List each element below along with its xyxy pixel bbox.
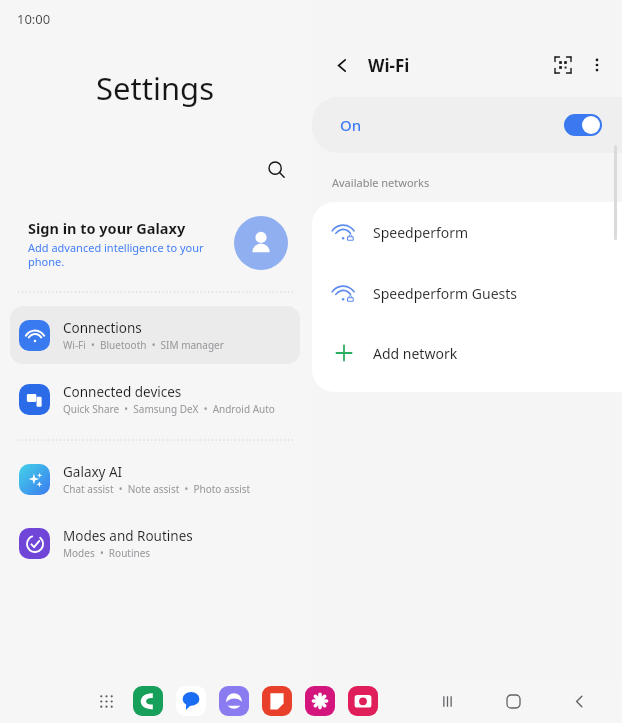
button[interactable]: Home — [498, 686, 528, 716]
button[interactable]: Speedperform — [312, 202, 622, 263]
button[interactable]: Internet — [219, 686, 249, 716]
staticText: Available networks — [332, 175, 430, 190]
staticText: Speedperform Guests — [373, 284, 517, 303]
button[interactable]: Recent apps — [432, 686, 462, 716]
staticText: Modes and Routines — [63, 527, 193, 545]
staticText: 10:00 — [17, 10, 51, 28]
button[interactable]: Connected devices — [10, 370, 300, 428]
button[interactable]: On — [312, 97, 622, 153]
button[interactable]: Modes and Routines — [10, 514, 300, 572]
staticText: Modes • Routines — [63, 546, 151, 560]
staticText: Galaxy AI — [63, 463, 123, 481]
staticText: On — [340, 115, 362, 135]
button[interactable]: Search — [258, 151, 294, 187]
button[interactable]: More options — [580, 48, 614, 82]
staticText: Wi-Fi — [368, 54, 410, 77]
button[interactable]: Back — [564, 686, 594, 716]
button[interactable]: Apps — [92, 687, 120, 715]
staticText: Add network — [373, 344, 458, 363]
button[interactable]: Sign in to your Galaxy — [0, 200, 310, 286]
staticText: Connections — [63, 319, 142, 337]
staticText: Connected devices — [63, 383, 182, 401]
button[interactable]: Galaxy AI — [10, 450, 300, 508]
button[interactable]: Messages — [176, 686, 206, 716]
staticText: Quick Share • Samsung DeX • Android Auto — [63, 402, 275, 416]
button[interactable]: Phone — [133, 686, 163, 716]
button[interactable]: Camera — [348, 686, 378, 716]
button[interactable]: Speedperform Guests — [312, 263, 622, 324]
button[interactable]: Notes — [262, 686, 292, 716]
staticText: Wi-Fi • Bluetooth • SIM manager — [63, 338, 224, 352]
button[interactable]: Scan QR code — [546, 48, 580, 82]
button[interactable]: Gallery — [305, 686, 335, 716]
button[interactable]: Add network — [312, 324, 622, 382]
staticText: Add advanced intelligence to your phone. — [28, 240, 204, 269]
staticText: Sign in to your Galaxy — [28, 218, 186, 238]
staticText: Chat assist • Note assist • Photo assist — [63, 482, 251, 496]
staticText: Speedperform — [373, 223, 469, 242]
staticText: Settings — [96, 67, 214, 109]
button[interactable]: Connections — [10, 306, 300, 364]
button[interactable]: Back — [326, 49, 358, 81]
